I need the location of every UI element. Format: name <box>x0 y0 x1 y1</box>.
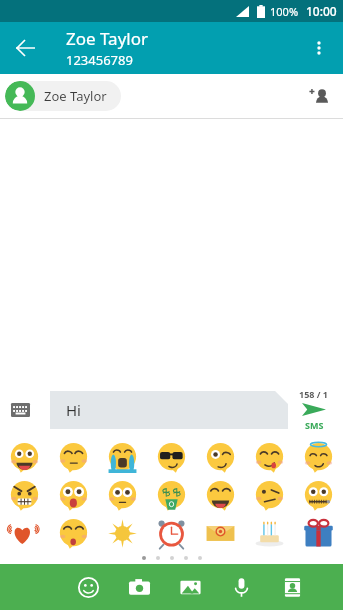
button[interactable]: Emoji <box>147 438 196 476</box>
button[interactable]: Emoji <box>98 438 147 476</box>
button[interactable]: Zoe Taylor <box>5 81 121 111</box>
button[interactable]: Emoji <box>49 514 98 552</box>
button[interactable]: Gallery <box>168 565 212 609</box>
button[interactable]: Emoji <box>0 438 49 476</box>
staticText: 158 / 1 <box>299 388 329 400</box>
button[interactable]: Add recipient <box>301 78 337 114</box>
button[interactable]: Hi <box>50 391 288 429</box>
button[interactable]: Emoji <box>196 476 245 514</box>
button[interactable]: Emoji <box>98 476 147 514</box>
button[interactable]: Back <box>6 28 46 68</box>
button[interactable]: Emoji <box>147 514 196 552</box>
button[interactable]: Emoji <box>0 514 49 552</box>
button[interactable]: Emoji <box>0 476 49 514</box>
staticText: Hi <box>66 400 81 420</box>
button[interactable]: Emoji <box>49 476 98 514</box>
button[interactable]: Send SMS <box>290 388 338 431</box>
button[interactable]: Emoji <box>66 565 110 609</box>
staticText: SMS <box>305 419 324 431</box>
button[interactable]: Keyboard <box>3 393 37 427</box>
button[interactable]: More options <box>299 28 339 68</box>
button[interactable]: Emoji <box>294 514 343 552</box>
button[interactable]: Emoji <box>294 476 343 514</box>
button[interactable]: Emoji <box>147 476 196 514</box>
button[interactable]: Emoji <box>294 438 343 476</box>
button[interactable]: Emoji <box>245 476 294 514</box>
button[interactable]: Emoji <box>196 438 245 476</box>
button[interactable]: Voice message <box>219 565 263 609</box>
button[interactable]: Emoji <box>196 514 245 552</box>
button[interactable]: Emoji <box>98 514 147 552</box>
staticText: Zoe Taylor <box>44 87 107 105</box>
button[interactable]: Contact <box>270 565 314 609</box>
staticText: 100% <box>270 4 299 19</box>
staticText: Zoe Taylor <box>66 27 149 50</box>
button[interactable]: Camera <box>117 565 161 609</box>
staticText: 123456789 <box>66 51 133 69</box>
staticText: 10:00 <box>306 3 337 19</box>
button[interactable]: Emoji <box>245 514 294 552</box>
button[interactable]: Emoji <box>245 438 294 476</box>
button[interactable]: Emoji <box>49 438 98 476</box>
